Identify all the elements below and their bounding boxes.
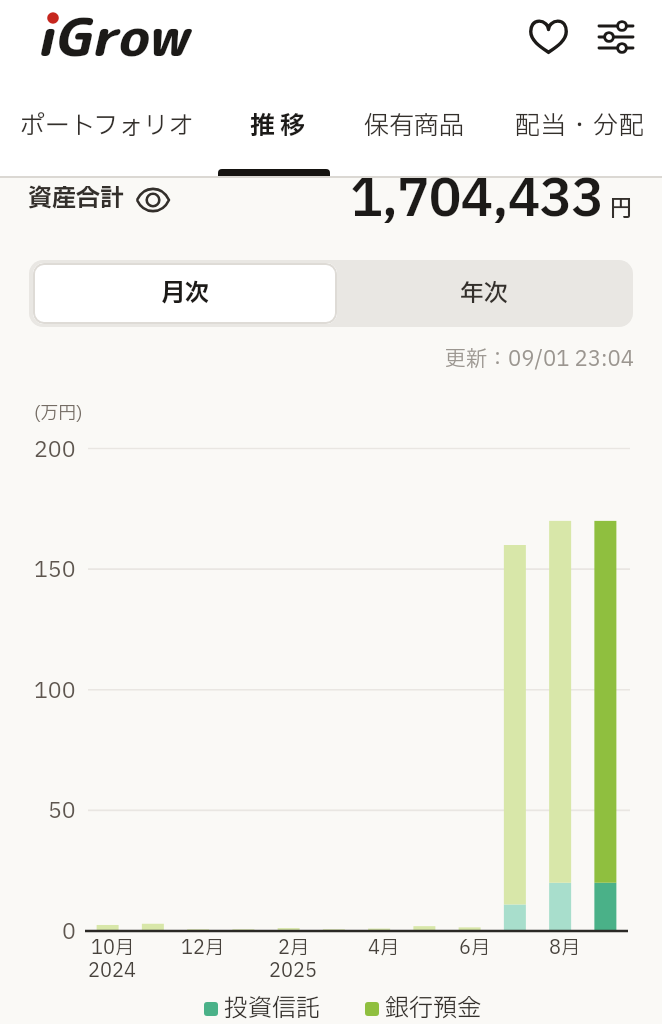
staticText: 200 bbox=[34, 434, 76, 467]
staticText: 50 bbox=[48, 795, 76, 828]
staticText: 推移 bbox=[250, 108, 311, 145]
staticText: 更新：09/01 23:04 bbox=[445, 344, 634, 375]
staticText: 銀行預金 bbox=[385, 991, 481, 1024]
staticText: 月次 bbox=[161, 276, 209, 312]
staticText: 資産合計 bbox=[28, 181, 124, 217]
staticText: 配当・分配 bbox=[515, 108, 646, 145]
staticText: 6月 bbox=[459, 934, 490, 962]
staticText: 100 bbox=[34, 675, 76, 708]
staticText: 8月 bbox=[549, 934, 580, 962]
staticText: (万円) bbox=[34, 400, 83, 427]
staticText: 1,704,433 bbox=[350, 161, 603, 239]
staticText: 0 bbox=[62, 916, 76, 949]
staticText: 10月 bbox=[91, 934, 134, 962]
staticText: 保有商品 bbox=[364, 108, 465, 145]
staticText: 投資信託 bbox=[224, 991, 320, 1024]
staticText: 4月 bbox=[368, 934, 399, 962]
staticText: 円 bbox=[610, 193, 633, 226]
staticText: 2月 bbox=[278, 934, 309, 962]
staticText: 2024 bbox=[88, 957, 136, 985]
staticText: 150 bbox=[34, 554, 76, 587]
staticText: 年次 bbox=[460, 276, 508, 312]
staticText: ポートフォリオ bbox=[20, 108, 194, 145]
staticText: 2025 bbox=[269, 957, 317, 985]
staticText: 12月 bbox=[181, 934, 224, 962]
